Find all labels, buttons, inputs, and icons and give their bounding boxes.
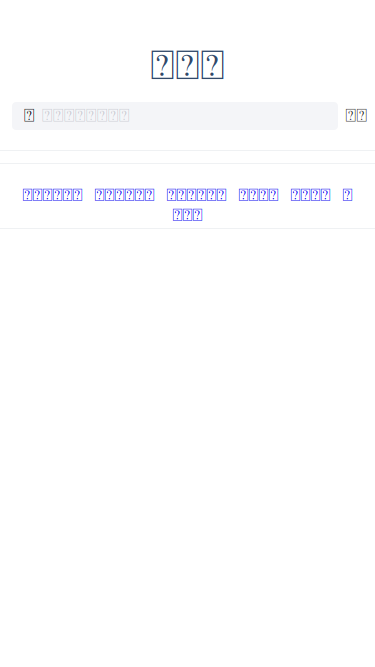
staticText: ⍰⍰⍰⍰	[238, 187, 278, 204]
staticText: ⍰	[24, 107, 35, 125]
button[interactable]: ⍰⍰⍰⍰⍰⍰	[94, 187, 154, 204]
button[interactable]: ⍰⍰⍰⍰⍰⍰	[166, 187, 226, 204]
button[interactable]: ⍰	[342, 187, 352, 204]
staticText: ⍰⍰⍰	[150, 46, 225, 87]
button[interactable]: ⍰⍰	[338, 102, 375, 130]
button[interactable]: ⍰⍰⍰⍰⍰⍰	[22, 187, 82, 204]
button[interactable]: Search	[12, 102, 338, 130]
staticText: ⍰⍰⍰⍰⍰⍰⍰⍰	[42, 107, 130, 125]
staticText: ⍰⍰	[345, 107, 367, 125]
staticText: ⍰⍰⍰⍰⍰⍰	[166, 187, 226, 204]
button[interactable]: ⍰⍰⍰	[172, 207, 202, 224]
staticText: ⍰⍰⍰⍰⍰⍰	[22, 187, 82, 204]
staticText: ⍰⍰⍰⍰	[290, 187, 330, 204]
staticText: ⍰	[342, 187, 352, 204]
staticText: ⍰⍰⍰⍰⍰⍰	[94, 187, 154, 204]
button[interactable]: ⍰⍰⍰⍰	[238, 187, 278, 204]
button[interactable]: ⍰⍰⍰⍰	[290, 187, 330, 204]
staticText: ⍰⍰⍰	[172, 207, 202, 224]
